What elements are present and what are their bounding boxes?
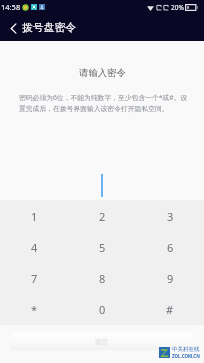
staticText: 确定 — [95, 337, 109, 346]
staticText: 20% — [171, 3, 184, 12]
staticText: 拨号盘密令 — [22, 21, 76, 35]
button[interactable]: 5 — [68, 232, 136, 263]
button[interactable]: 3 — [136, 200, 204, 232]
staticText: ZOL.COM.CN — [172, 353, 200, 359]
staticText: 8 — [99, 271, 106, 286]
staticText: 6 — [167, 240, 174, 255]
staticText: 0 — [99, 302, 106, 317]
staticText: 4 — [31, 240, 38, 255]
button[interactable]: 确定 — [10, 333, 194, 350]
button[interactable]: Back — [0, 15, 26, 41]
staticText: * — [31, 302, 38, 317]
staticText: 14:58 — [1, 2, 21, 12]
staticText: 9 — [167, 271, 174, 286]
button[interactable]: # — [136, 294, 204, 325]
staticText: 5 — [99, 240, 106, 255]
staticText: 3 — [167, 209, 174, 224]
button[interactable]: 6 — [136, 232, 204, 263]
staticText: 2 — [99, 209, 106, 224]
staticText: 密码必须为6位，不能为纯数字，至少包含一个*或#。设置完成后，在拨号界面输入该密… — [19, 93, 188, 113]
button[interactable]: 8 — [68, 263, 136, 294]
staticText: 7 — [31, 271, 38, 286]
button[interactable]: 1 — [0, 200, 68, 232]
staticText: 1 — [31, 209, 38, 224]
button[interactable]: * — [0, 294, 68, 325]
button[interactable]: 9 — [136, 263, 204, 294]
staticText: # — [166, 302, 174, 317]
button[interactable]: 0 — [68, 294, 136, 325]
staticText: 请输入密令 — [79, 67, 126, 79]
button[interactable]: 4 — [0, 232, 68, 263]
staticText: 中关村在线 — [172, 346, 200, 353]
button[interactable]: 7 — [0, 263, 68, 294]
button[interactable]: 2 — [68, 200, 136, 232]
